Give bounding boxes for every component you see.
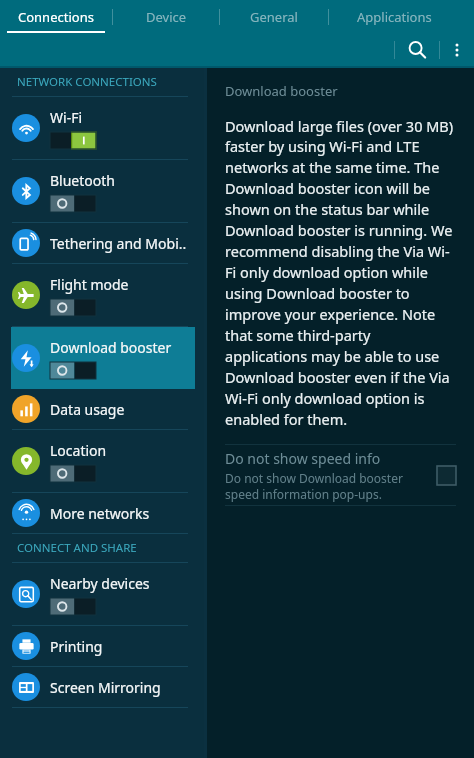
button[interactable]: Location xyxy=(0,430,204,492)
button[interactable]: Download booster xyxy=(11,327,195,389)
button[interactable]: General xyxy=(220,0,328,33)
staticText: Connections xyxy=(18,8,94,26)
button[interactable]: Device xyxy=(113,0,219,33)
staticText: Data usage xyxy=(50,400,125,419)
button[interactable]: More options xyxy=(440,33,474,66)
staticText: NETWORK CONNECTIONS xyxy=(17,74,157,90)
staticText: Do not show Download booster speed infor… xyxy=(225,470,429,502)
staticText: Download booster xyxy=(225,82,338,100)
button[interactable]: Tethering and Mobi.. xyxy=(0,223,204,263)
button[interactable]: Connections xyxy=(0,0,112,33)
staticText: CONNECT AND SHARE xyxy=(17,540,137,556)
staticText: Do not show speed info xyxy=(225,449,381,468)
staticText: Nearby devices xyxy=(50,574,150,593)
staticText: Download booster xyxy=(50,338,172,357)
staticText: More networks xyxy=(50,504,150,523)
staticText: Bluetooth xyxy=(50,171,115,190)
button[interactable]: Wi-Fi xyxy=(0,97,204,159)
staticText: Flight mode xyxy=(50,275,129,294)
staticText: Tethering and Mobi.. xyxy=(50,234,187,253)
button[interactable]: More networks xyxy=(0,493,204,533)
staticText: Device xyxy=(146,8,187,26)
staticText: Screen Mirroring xyxy=(50,678,161,697)
staticText: Location xyxy=(50,441,107,460)
button[interactable]: Flight mode xyxy=(0,264,204,326)
button[interactable]: Applications xyxy=(329,0,459,33)
staticText: Download large files (over 30 MB) faster… xyxy=(225,116,456,430)
staticText: Printing xyxy=(50,637,103,656)
button[interactable]: Printing xyxy=(0,626,204,666)
button[interactable]: Do not show speed info xyxy=(225,445,456,505)
staticText: Applications xyxy=(357,8,432,26)
staticText: Wi-Fi xyxy=(50,108,83,127)
staticText: General xyxy=(250,8,298,26)
button[interactable]: Screen Mirroring xyxy=(0,667,204,707)
button[interactable]: Nearby devices xyxy=(0,563,204,625)
button[interactable]: Bluetooth xyxy=(0,160,204,222)
button[interactable]: Search xyxy=(395,33,439,66)
button[interactable]: Data usage xyxy=(0,389,204,429)
